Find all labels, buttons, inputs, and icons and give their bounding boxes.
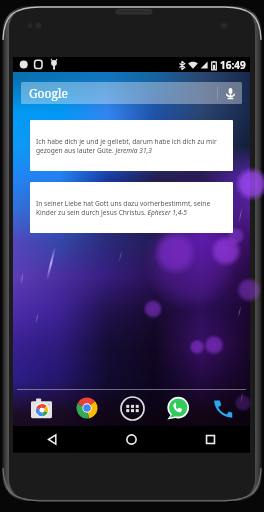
button[interactable]: Google: [21, 82, 242, 104]
button[interactable]: Phone: [200, 390, 245, 426]
staticText: 16:49: [220, 58, 246, 72]
button[interactable]: Camera: [18, 390, 64, 426]
staticText: In seiner Liebe hat Gott uns dazu vorher…: [36, 199, 227, 217]
button[interactable]: Back: [13, 426, 92, 452]
button[interactable]: WhatsApp: [155, 390, 200, 426]
button[interactable]: Chrome: [64, 390, 110, 426]
button[interactable]: All apps: [110, 390, 155, 426]
button[interactable]: Voice search: [218, 82, 242, 104]
button[interactable]: Recents: [171, 426, 250, 452]
staticText: Google: [29, 85, 69, 101]
button[interactable]: Home: [92, 426, 171, 452]
staticText: Ich habe dich je und je geliebt, darum h…: [36, 137, 227, 155]
button[interactable]: In seiner Liebe hat Gott uns dazu vorher…: [30, 182, 233, 233]
button[interactable]: Ich habe dich je und je geliebt, darum h…: [30, 120, 233, 171]
